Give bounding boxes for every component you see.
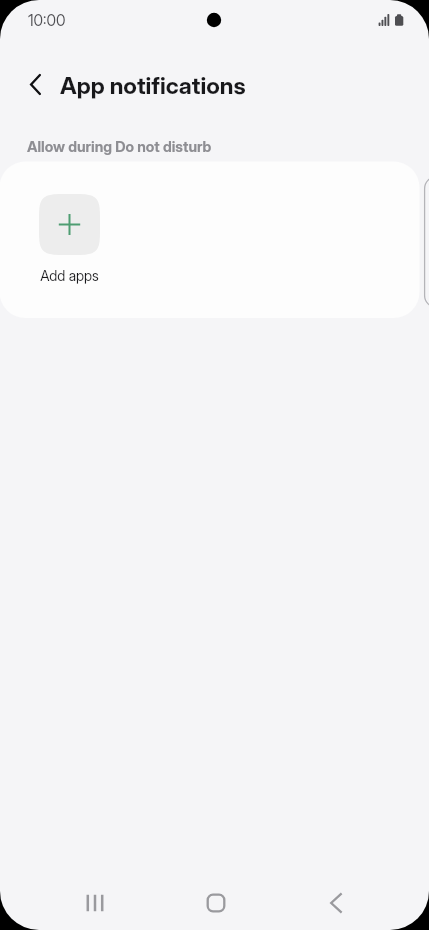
staticText: 10:00 <box>28 11 66 30</box>
button[interactable]: Home <box>190 877 242 929</box>
button[interactable]: Recent apps <box>69 877 121 929</box>
button[interactable]: Add apps <box>24 194 114 284</box>
staticText: Add apps <box>40 267 99 284</box>
button[interactable]: Back <box>310 877 362 929</box>
staticText: App notifications <box>60 71 246 99</box>
button[interactable]: Navigate up <box>14 63 57 106</box>
staticText: Allow during Do not disturb <box>27 138 212 156</box>
